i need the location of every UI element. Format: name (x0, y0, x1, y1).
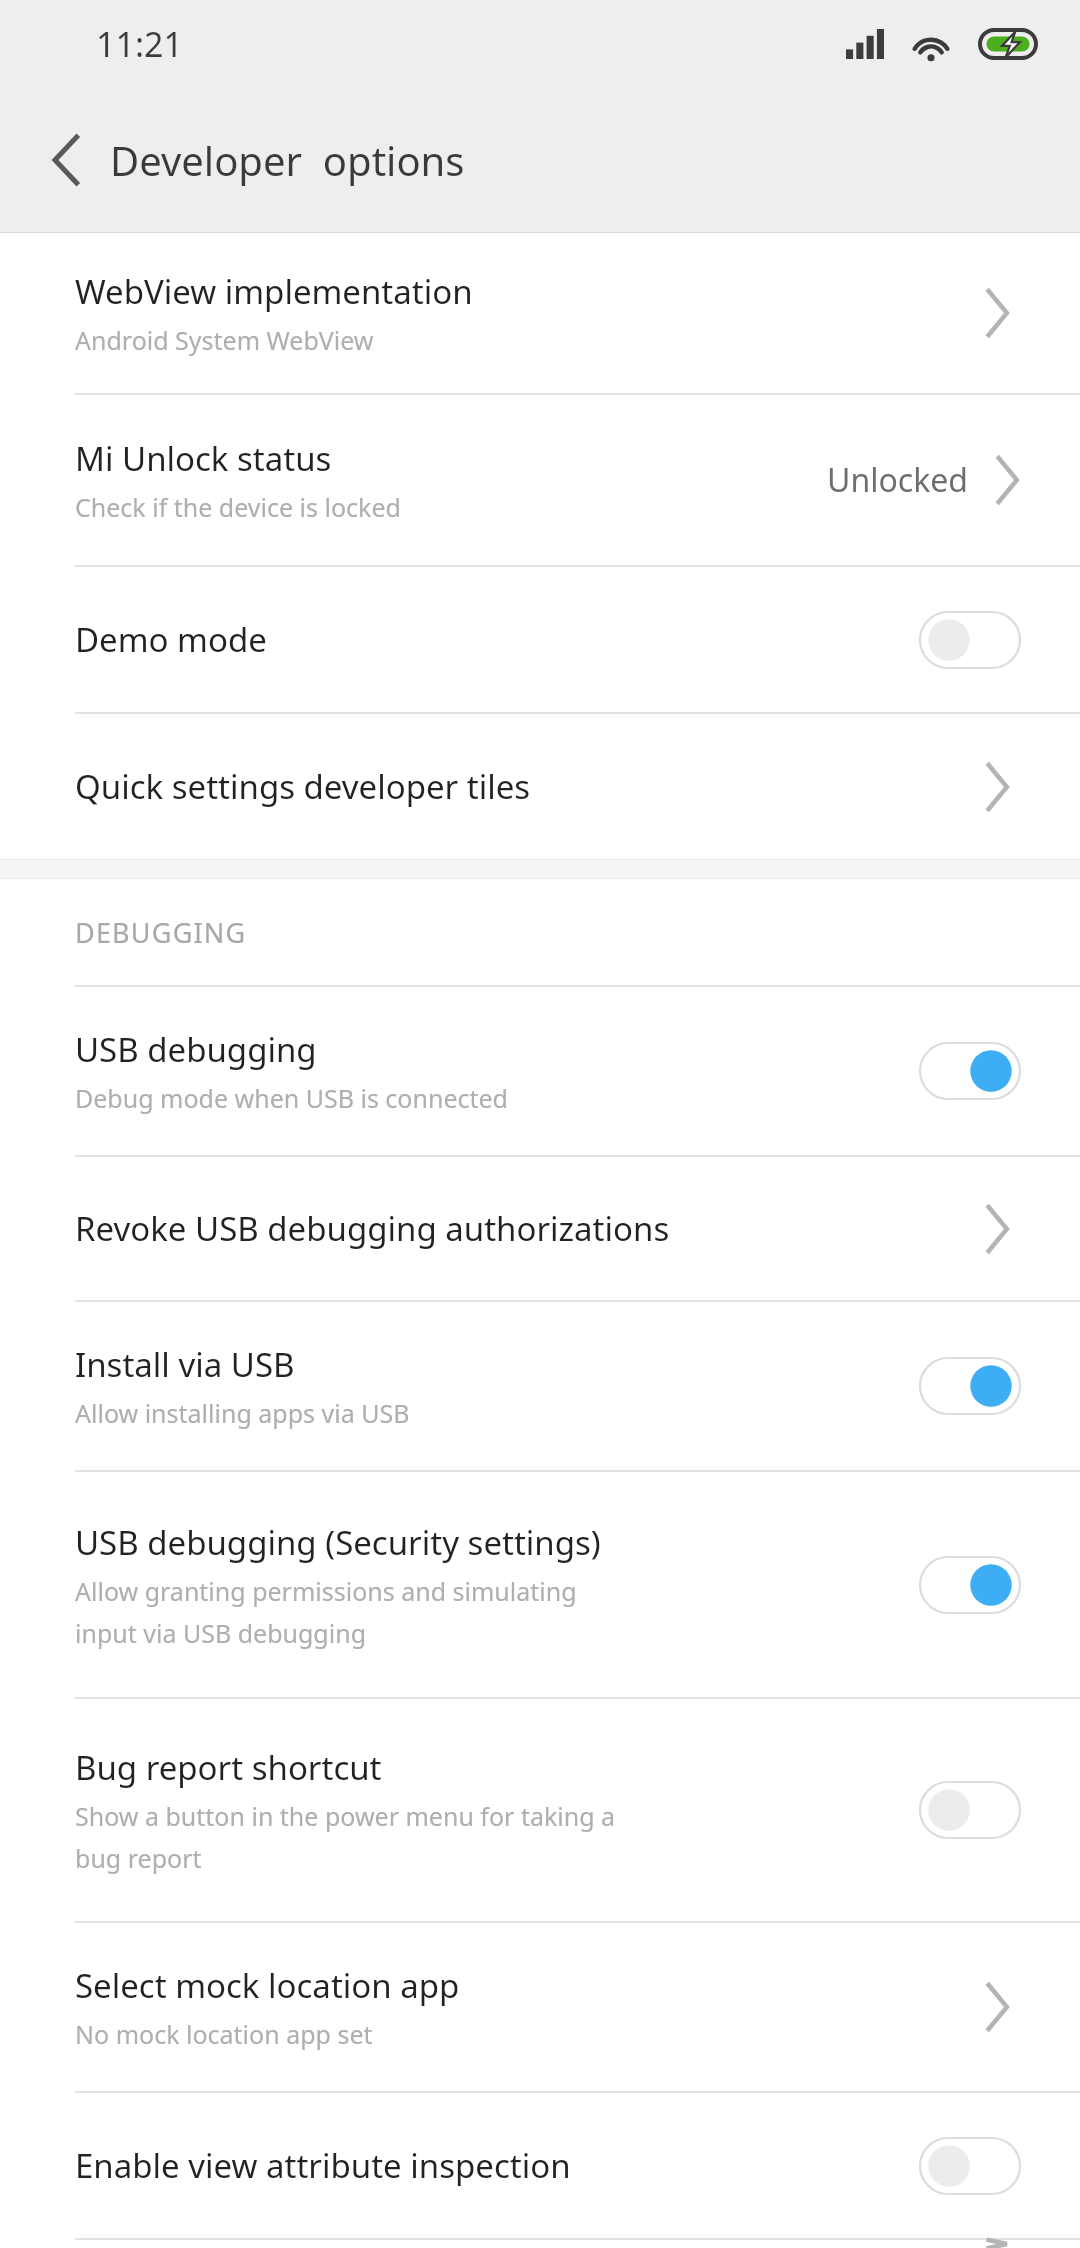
staticText: Check if the device is locked (75, 490, 401, 524)
staticText: Mi Unlock status (75, 436, 332, 481)
button[interactable]: On (920, 1043, 1020, 1099)
staticText: Android System WebView (75, 323, 374, 357)
button[interactable]: Enable view attribute inspection (0, 2093, 1080, 2238)
button[interactable]: Quick settings developer tiles (0, 714, 1080, 859)
button[interactable]: WebView implementation (0, 233, 1080, 393)
button[interactable]: Select mock location app (0, 1923, 1080, 2091)
staticText: USB debugging (Security settings) (75, 1520, 601, 1565)
staticText: 11:21 (96, 21, 183, 67)
button[interactable]: Revoke USB debugging authorizations (0, 1157, 1080, 1300)
staticText: DEBUGGING (75, 914, 247, 951)
staticText: Developer options (110, 133, 465, 187)
button[interactable]: On (920, 1358, 1020, 1414)
button[interactable]: Off (920, 1782, 1020, 1838)
staticText: Quick settings developer tiles (75, 764, 531, 809)
staticText: WebView implementation (75, 269, 473, 314)
staticText: Bug report shortcut (75, 1745, 382, 1790)
staticText: Allow installing apps via USB (75, 1396, 410, 1430)
button[interactable]: Off (920, 2138, 1020, 2194)
staticText: No mock location app set (75, 2017, 373, 2051)
staticText: USB debugging (75, 1027, 317, 1072)
staticText: Debug mode when USB is connected (75, 1081, 508, 1115)
staticText: Demo mode (75, 617, 267, 662)
button[interactable]: On (920, 1557, 1020, 1613)
staticText: Revoke USB debugging authorizations (75, 1206, 670, 1251)
button[interactable]: USB debugging (0, 987, 1080, 1155)
button[interactable]: Select debug app (0, 2240, 1080, 2248)
button[interactable]: Install via USB (0, 1302, 1080, 1470)
button[interactable]: USB debugging (Security settings) (0, 1472, 1080, 1697)
button[interactable]: Back (24, 117, 110, 203)
button[interactable]: Off (920, 612, 1020, 668)
button[interactable]: Mi Unlock status (0, 395, 1080, 565)
button[interactable]: Demo mode (0, 567, 1080, 712)
staticText: Enable view attribute inspection (75, 2143, 571, 2188)
staticText: Show a button in the power menu for taki… (75, 1799, 635, 1875)
staticText: Select mock location app (75, 1963, 460, 2008)
staticText: Allow granting permissions and simulatin… (75, 1574, 635, 1650)
staticText: Install via USB (75, 1342, 295, 1387)
staticText: Unlocked (827, 458, 968, 502)
button[interactable]: Bug report shortcut (0, 1699, 1080, 1921)
